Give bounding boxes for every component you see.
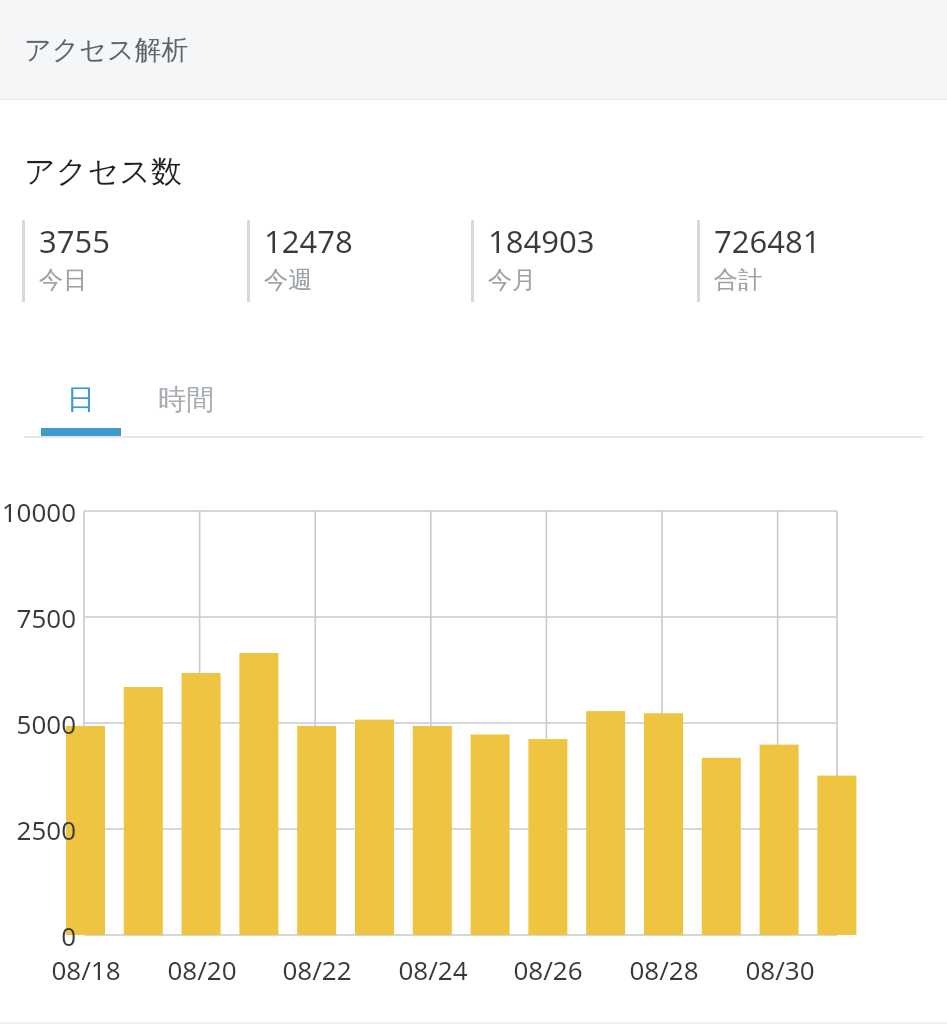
staticText: 今週 (264, 265, 312, 295)
staticText: 7500 (16, 600, 76, 635)
staticText: 08/20 (167, 952, 237, 987)
staticText: 08/26 (513, 952, 583, 987)
staticText: 今月 (488, 265, 536, 295)
button[interactable]: 184903 (471, 220, 695, 304)
staticText: 3755 (39, 220, 110, 262)
button[interactable]: 3755 (22, 220, 246, 304)
button[interactable]: 726481 (697, 220, 921, 304)
staticText: 日 (67, 382, 95, 417)
staticText: 0 (61, 918, 76, 953)
staticText: 08/24 (398, 952, 468, 987)
staticText: アクセス数 (24, 152, 182, 191)
staticText: 2500 (16, 812, 76, 847)
staticText: 12478 (264, 220, 353, 262)
staticText: 5000 (16, 706, 76, 741)
staticText: 08/30 (745, 952, 815, 987)
other: Daily access bar chart (0, 0, 947, 1024)
staticText: アクセス解析 (24, 33, 189, 67)
staticText: 10000 (1, 494, 76, 529)
staticText: 今日 (39, 265, 87, 295)
button[interactable]: 時間 (131, 370, 241, 428)
staticText: 08/18 (51, 952, 121, 987)
staticText: 時間 (158, 382, 214, 417)
staticText: 08/28 (629, 952, 699, 987)
staticText: 184903 (488, 220, 595, 262)
staticText: 726481 (714, 220, 821, 262)
staticText: 合計 (714, 265, 762, 295)
button[interactable]: 日 (41, 370, 121, 428)
button[interactable]: 12478 (247, 220, 471, 304)
staticText: 08/22 (282, 952, 352, 987)
